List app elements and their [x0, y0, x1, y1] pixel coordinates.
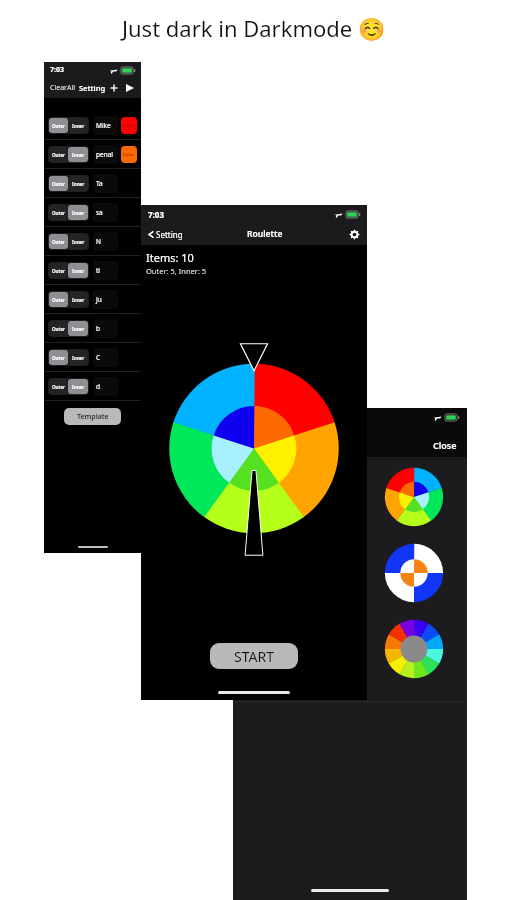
button[interactable]: Outer [48, 314, 137, 342]
button[interactable]: Outer [49, 350, 68, 365]
staticText: Inner [72, 239, 85, 245]
button[interactable]: Outer [48, 256, 137, 284]
staticText: Ju [96, 295, 102, 304]
button[interactable]: Inner [68, 379, 88, 394]
staticText: Inner [72, 355, 85, 361]
button[interactable]: Outer [48, 227, 137, 255]
staticText: Roulette [247, 228, 283, 240]
staticText: Outer [52, 239, 66, 245]
button[interactable]: Setting [147, 228, 184, 241]
staticText: Inner: 0 items [243, 685, 302, 697]
button[interactable] [233, 541, 467, 605]
button[interactable]: ClearAll [49, 82, 77, 94]
staticText: Templates [241, 435, 319, 455]
staticText: Inner [72, 384, 85, 390]
button[interactable] [233, 465, 467, 529]
staticText: C [96, 353, 101, 362]
staticText: Outer [52, 181, 66, 187]
staticText: 7:03 [148, 209, 164, 220]
button[interactable]: Inner [68, 321, 88, 336]
button[interactable]: penalty [96, 145, 115, 164]
button[interactable]: Color [121, 117, 137, 134]
button[interactable]: START [210, 643, 298, 669]
button[interactable]: Settings [347, 227, 361, 241]
button[interactable]: Start roulette [124, 82, 136, 94]
staticText: Outer [52, 268, 66, 274]
button[interactable]: Inner [68, 350, 88, 365]
staticText: START [234, 647, 274, 666]
staticText: Outer: 5, Inner: 5 [146, 266, 207, 276]
staticText: Close [433, 439, 457, 451]
staticText: Inner [72, 181, 85, 187]
staticText: Mike [96, 121, 111, 130]
staticText: Outer [52, 152, 66, 158]
button[interactable]: Outer [49, 321, 68, 336]
staticText: ti [96, 266, 101, 275]
staticText: Inner [72, 210, 85, 216]
button[interactable]: Outer [48, 198, 137, 226]
button[interactable]: Outer [48, 111, 137, 139]
staticText: ClearAll [50, 83, 76, 93]
button[interactable]: Inner [68, 176, 88, 191]
staticText: Outer [52, 355, 66, 361]
button[interactable]: Inner [68, 147, 88, 162]
staticText: Color [123, 123, 135, 129]
button[interactable]: Add item [108, 82, 120, 94]
button[interactable]: Outer [49, 205, 68, 220]
button[interactable]: Mike [96, 116, 115, 135]
staticText: Template [77, 412, 109, 422]
button[interactable]: Inner [68, 263, 88, 278]
button[interactable]: Outer [49, 263, 68, 278]
staticText: Just dark in Darkmode ☺ [122, 13, 386, 43]
staticText: Outer [52, 210, 66, 216]
button[interactable]: Outer [49, 379, 68, 394]
staticText: Ta [96, 179, 103, 188]
button[interactable]: Outer [48, 140, 137, 168]
staticText: Inner [72, 326, 85, 332]
button[interactable]: Outer [48, 372, 137, 400]
button[interactable]: N [96, 232, 115, 251]
staticText: sa [96, 208, 103, 217]
staticText: Setting [156, 229, 183, 240]
button[interactable]: C [96, 348, 115, 367]
staticText: Inner [72, 123, 85, 129]
button[interactable]: Inner [68, 205, 88, 220]
staticText: Color [123, 152, 135, 158]
button[interactable]: Inner [68, 118, 88, 133]
button[interactable]: Ta [96, 174, 115, 193]
button[interactable]: ti [96, 261, 115, 280]
staticText: Outer [52, 297, 66, 303]
button[interactable]: d [96, 377, 115, 396]
staticText: Items: 10 [146, 250, 194, 265]
staticText: N [96, 237, 101, 246]
button[interactable]: Inner [68, 234, 88, 249]
button[interactable]: Ju [96, 290, 115, 309]
button[interactable]: Close [431, 437, 459, 453]
button[interactable] [233, 617, 467, 681]
staticText: Setting [79, 83, 106, 93]
button[interactable]: Inner [68, 292, 88, 307]
staticText: 7:03 [241, 412, 257, 423]
staticText: b [96, 324, 100, 333]
button[interactable]: Outer [49, 118, 68, 133]
staticText: Outer [52, 326, 66, 332]
button[interactable]: Template [64, 408, 121, 425]
button[interactable]: Outer [48, 285, 137, 313]
staticText: penalty [96, 150, 115, 159]
staticText: Outer [52, 123, 66, 129]
button[interactable]: Outer [49, 292, 68, 307]
staticText: Inner [72, 268, 85, 274]
button[interactable]: Color [121, 146, 137, 163]
button[interactable]: Outer [49, 234, 68, 249]
button[interactable]: Outer [48, 169, 137, 197]
staticText: 7:03 [50, 65, 64, 75]
staticText: d [96, 382, 100, 391]
button[interactable]: b [96, 319, 115, 338]
button[interactable]: Outer [48, 343, 137, 371]
button[interactable]: Outer [49, 176, 68, 191]
button[interactable]: sa [96, 203, 115, 222]
staticText: Inner [72, 297, 85, 303]
staticText: Inner [72, 152, 85, 158]
staticText: Outer [52, 384, 66, 390]
button[interactable]: Outer [49, 147, 68, 162]
